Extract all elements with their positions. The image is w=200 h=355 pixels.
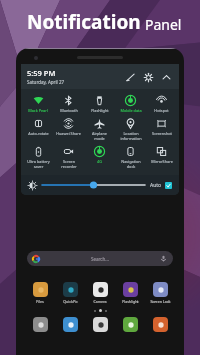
button[interactable]: Screenshot [146,117,177,137]
staticText: Flashlight [91,108,109,113]
button[interactable]: Black Pearl [23,94,53,114]
button[interactable] [115,317,145,332]
button[interactable]: 4G [84,145,115,165]
button[interactable]: Files [25,282,55,304]
button[interactable] [25,317,55,332]
button[interactable] [85,317,115,332]
button[interactable]: Settings [141,70,155,84]
button[interactable]: Ultra battery saver [23,145,53,170]
button[interactable] [145,317,175,332]
button[interactable]: Hotspot [146,94,177,114]
staticText: Auto-rotate [28,131,49,136]
staticText: Flashlight [122,299,139,304]
button[interactable]: Collapse [159,70,173,84]
button[interactable]: Screen recorder [53,145,84,170]
staticText: Panel [145,15,182,34]
staticText: Mobile data [120,108,142,113]
button[interactable]: Airplane mode [84,117,115,142]
staticText: Saturday, April 27 [27,79,65,85]
staticText: Airplane mode [92,131,107,141]
button[interactable]: Search... [27,251,173,266]
staticText: Screenshot [152,131,172,136]
button[interactable]: Screen Lock [145,282,175,304]
button[interactable]: Location information [115,117,146,142]
staticText: Location information [120,131,142,141]
button[interactable]: Edit [123,70,137,84]
staticText: Screen Lock [150,299,171,304]
button[interactable]: Flashlight [115,282,145,304]
staticText: Ultra battery saver [27,159,50,169]
button[interactable]: MirrorShare [146,145,177,165]
button[interactable]: Camera [85,282,115,304]
staticText: 4G [97,159,102,164]
button[interactable]: Auto-rotate [23,117,53,137]
staticText: Auto [150,182,162,189]
button[interactable]: Bluetooth [53,94,84,114]
staticText: Camera [93,299,107,304]
staticText: Screen recorder [61,159,77,169]
staticText: Black Pearl [28,108,48,113]
button[interactable]: Huawei Share [53,117,84,137]
button[interactable]: Flashlight [84,94,115,114]
button[interactable]: QuickPic [55,282,85,304]
button[interactable]: Auto brightness [165,182,172,189]
staticText: Hotspot [154,108,169,113]
staticText: Notification [27,9,141,35]
staticText: Files [36,299,44,304]
button[interactable] [55,317,85,332]
staticText: QuickPic [63,299,78,304]
button[interactable]: Navigation dock [115,145,146,170]
button[interactable]: Mobile data [115,94,146,114]
staticText: Huawei Share [56,131,81,136]
staticText: Bluetooth [60,108,78,113]
staticText: 5:59 PM [27,68,56,78]
staticText: Navigation dock [121,159,141,169]
staticText: MirrorShare [151,159,173,164]
staticText: Search... [91,256,109,262]
